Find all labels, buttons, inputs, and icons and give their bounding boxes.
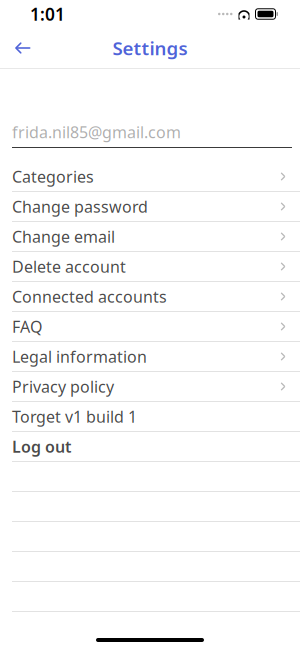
- staticText: Legal information: [12, 346, 147, 367]
- staticText: Delete account: [12, 256, 126, 277]
- staticText: Privacy policy: [12, 376, 114, 397]
- button[interactable]: Categories: [0, 162, 300, 191]
- button[interactable]: Log out: [0, 432, 300, 461]
- staticText: Torget v1 build 1: [12, 406, 137, 427]
- staticText: FAQ: [12, 316, 42, 337]
- button[interactable]: Change password: [0, 192, 300, 221]
- staticText: Categories: [12, 166, 94, 187]
- button[interactable]: Connected accounts: [0, 282, 300, 311]
- staticText: Connected accounts: [12, 286, 167, 307]
- button[interactable]: Change email: [0, 222, 300, 251]
- button[interactable]: Torget v1 build 1: [0, 402, 300, 431]
- button[interactable]: Legal information: [0, 342, 300, 371]
- button[interactable]: Privacy policy: [0, 372, 300, 401]
- button[interactable]: Delete account: [0, 252, 300, 281]
- staticText: Change password: [12, 196, 148, 217]
- button[interactable]: FAQ: [0, 312, 300, 341]
- button[interactable]: Back: [1, 28, 45, 68]
- staticText: 1:01: [30, 2, 65, 25]
- staticText: Log out: [12, 436, 71, 457]
- staticText: Settings: [112, 36, 187, 60]
- staticText: frida.nil85@gmail.com: [12, 121, 181, 143]
- staticText: Change email: [12, 226, 115, 247]
